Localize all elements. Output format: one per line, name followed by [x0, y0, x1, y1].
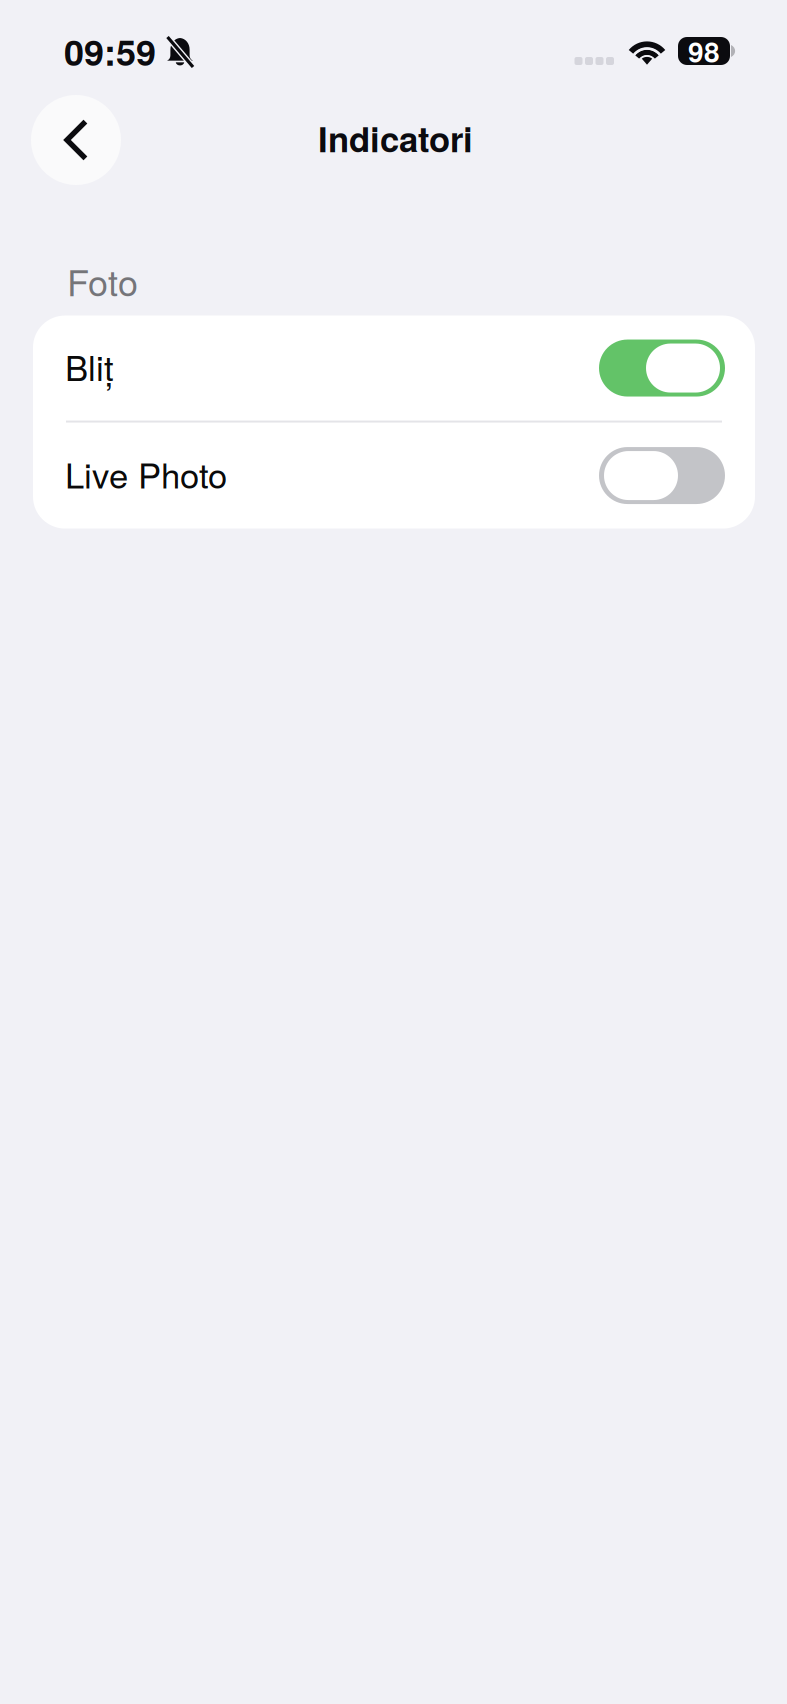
button[interactable]: Live Photo [33, 423, 755, 529]
staticText: 09:59 [64, 25, 156, 77]
staticText: Bliț [65, 341, 114, 391]
staticText: Indicatori [318, 113, 473, 163]
staticText: 98 [688, 31, 720, 71]
button[interactable]: Back [31, 95, 121, 185]
staticText: Foto [67, 255, 138, 307]
button[interactable]: Bliț [33, 316, 755, 421]
staticText: Live Photo [65, 449, 227, 498]
